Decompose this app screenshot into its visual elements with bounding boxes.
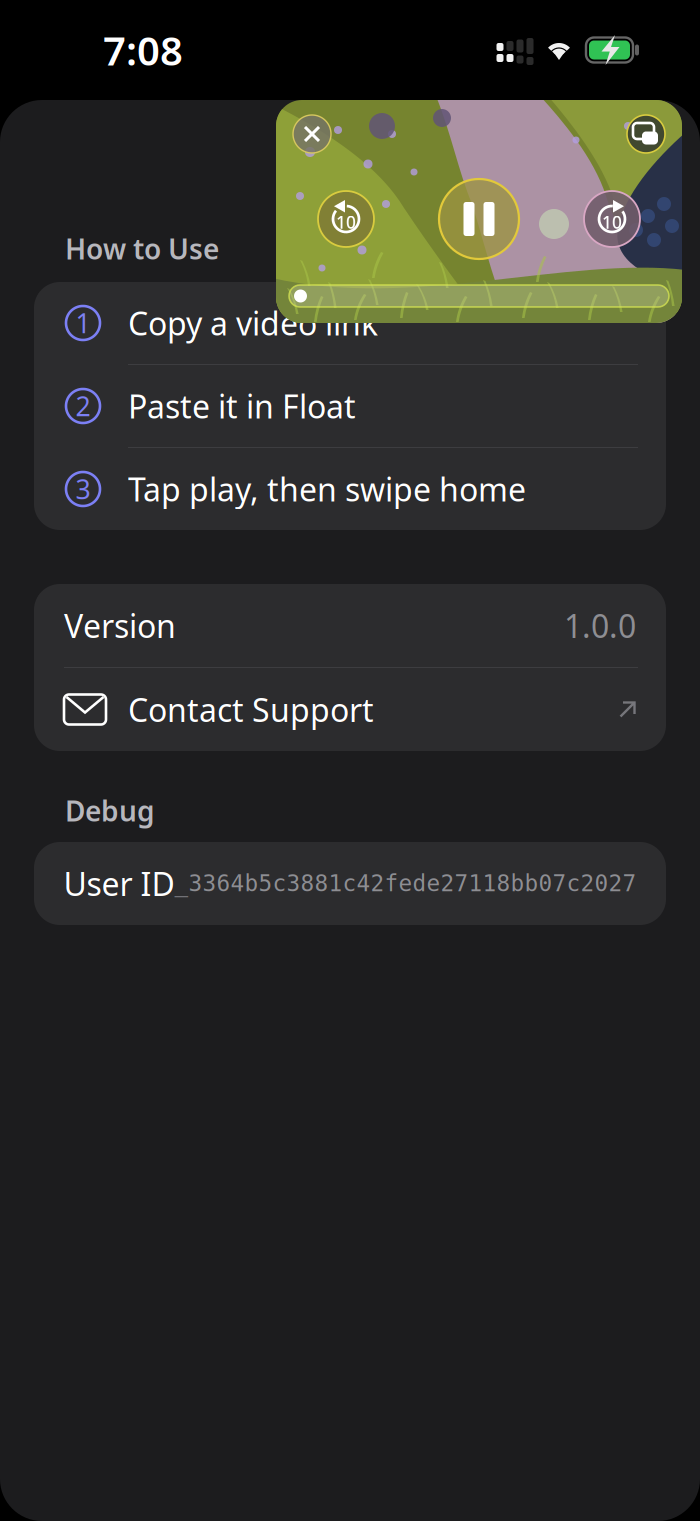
button[interactable]: 1 — [34, 282, 666, 364]
button[interactable]: Picture in Picture — [627, 115, 665, 153]
staticText: 1.0.0 — [564, 604, 636, 647]
staticText: Contact Support — [128, 688, 374, 731]
button[interactable]: Pause — [439, 179, 519, 259]
button[interactable]: Version — [34, 584, 666, 667]
staticText: 3 — [75, 471, 90, 507]
button[interactable]: Contact Support — [34, 668, 666, 751]
button[interactable]: 2 — [34, 365, 666, 447]
button[interactable]: User ID — [34, 842, 666, 925]
staticText: User ID — [63, 862, 174, 905]
staticText: 1 — [75, 305, 90, 341]
staticText: Paste it in Float — [128, 385, 356, 427]
button[interactable]: Forward 10 seconds — [584, 191, 640, 247]
staticText: Debug — [65, 792, 155, 829]
staticText: _3364b5c3881c42fede27118bb07c2027 — [174, 871, 636, 896]
staticText: 2 — [75, 388, 90, 424]
button[interactable]: 3 — [34, 448, 666, 530]
staticText: 10 — [602, 210, 622, 233]
staticText: Copy a video link — [128, 302, 378, 344]
button[interactable]: Back 10 seconds — [318, 191, 374, 247]
button[interactable]: Close — [293, 115, 331, 153]
staticText: Tap play, then swipe home — [128, 468, 526, 510]
staticText: 7:08 — [103, 23, 183, 76]
staticText: How to Use — [65, 230, 219, 267]
staticText: 10 — [336, 210, 356, 233]
staticText: Version — [64, 604, 176, 647]
